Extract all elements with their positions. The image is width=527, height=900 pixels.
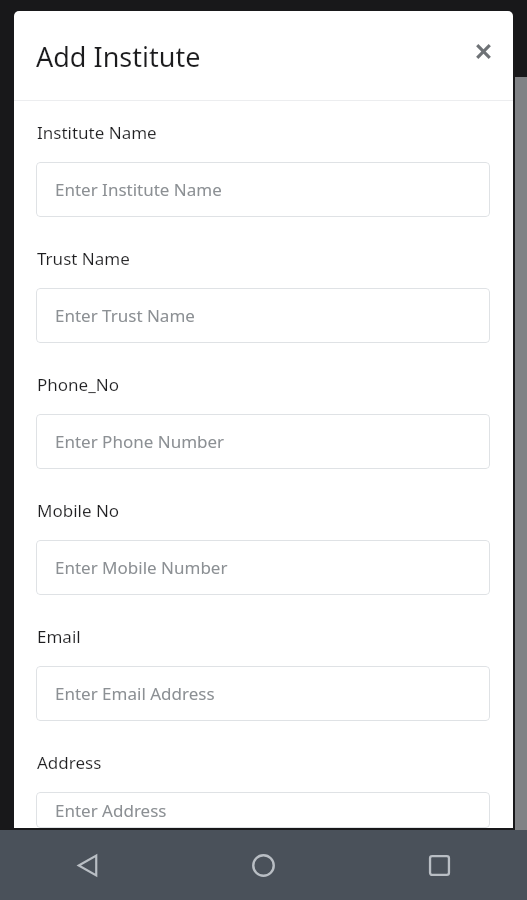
staticText: Institute Name bbox=[37, 121, 157, 144]
button[interactable]: Enter Institute Name bbox=[36, 162, 490, 217]
staticText: Enter Mobile Number bbox=[55, 556, 228, 579]
button[interactable]: Back bbox=[0, 830, 175, 900]
button[interactable]: Enter Address bbox=[36, 792, 490, 828]
staticText: Enter Institute Name bbox=[55, 178, 222, 201]
button[interactable]: Enter Trust Name bbox=[36, 288, 490, 343]
button[interactable]: Enter Mobile Number bbox=[36, 540, 490, 595]
staticText: Enter Address bbox=[55, 799, 167, 822]
button[interactable]: Close bbox=[462, 30, 504, 72]
button[interactable]: Enter Phone Number bbox=[36, 414, 490, 469]
staticText: Phone_No bbox=[37, 373, 119, 396]
staticText: Add Institute bbox=[36, 38, 201, 75]
staticText: Enter Trust Name bbox=[55, 304, 195, 327]
button[interactable]: Enter Email Address bbox=[36, 666, 490, 721]
staticText: Enter Phone Number bbox=[55, 430, 225, 453]
button[interactable]: Recent apps bbox=[352, 830, 527, 900]
staticText: Mobile No bbox=[37, 499, 120, 522]
staticText: Enter Email Address bbox=[55, 682, 215, 705]
button[interactable]: Home bbox=[175, 830, 352, 900]
staticText: Address bbox=[37, 751, 102, 774]
staticText: Trust Name bbox=[37, 247, 130, 270]
staticText: Email bbox=[37, 625, 81, 648]
